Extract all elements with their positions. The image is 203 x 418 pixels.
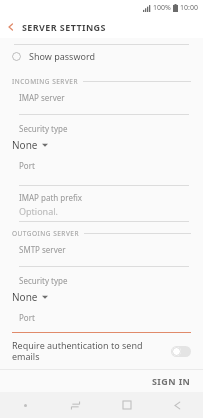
button[interactable]: Back bbox=[0, 16, 22, 38]
staticText: SMTP server bbox=[19, 244, 66, 255]
staticText: Show password bbox=[29, 50, 95, 62]
staticText: SIGN IN bbox=[152, 375, 191, 387]
button[interactable]: Back bbox=[152, 392, 203, 418]
staticText: SERVER SETTINGS bbox=[22, 21, 106, 33]
staticText: IMAP server bbox=[19, 92, 65, 103]
staticText: Port bbox=[19, 160, 35, 171]
staticText: Require authentication to send emails bbox=[12, 339, 165, 363]
button[interactable]: Recents bbox=[50, 392, 101, 418]
staticText: 10:00 bbox=[180, 3, 198, 13]
staticText: Security type bbox=[19, 123, 68, 134]
button[interactable]: Require authentication to send emails bbox=[0, 333, 203, 369]
button[interactable]: Home bbox=[101, 392, 152, 418]
button[interactable]: SIGN IN bbox=[140, 371, 203, 391]
staticText: Security type bbox=[19, 275, 68, 286]
staticText: None bbox=[12, 138, 38, 152]
staticText: None bbox=[12, 290, 38, 304]
button[interactable]: None bbox=[0, 137, 203, 153]
button[interactable]: None bbox=[0, 289, 203, 305]
staticText: Optional. bbox=[19, 205, 58, 217]
button[interactable]: Show password bbox=[0, 45, 203, 67]
staticText: INCOMING SERVER bbox=[12, 77, 78, 86]
button[interactable]: Menu bbox=[0, 392, 50, 418]
staticText: IMAP path prefix bbox=[19, 192, 82, 203]
staticText: Port bbox=[19, 312, 35, 323]
staticText: OUTGOING SERVER bbox=[12, 229, 79, 238]
staticText: 100% bbox=[153, 3, 171, 13]
